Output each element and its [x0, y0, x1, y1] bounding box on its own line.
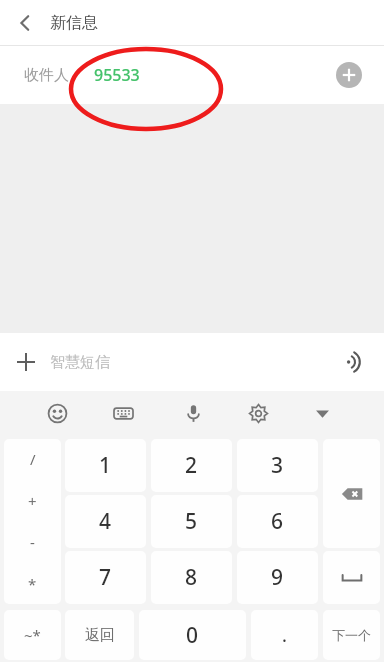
button[interactable]: Settings	[241, 396, 275, 430]
staticText: 收件人	[24, 66, 69, 85]
button[interactable]: 2	[151, 439, 232, 492]
button[interactable]: Hide keyboard	[305, 396, 339, 430]
staticText: 7	[99, 563, 112, 592]
staticText: +	[28, 491, 37, 511]
staticText: 新信息	[50, 13, 98, 33]
staticText: 9	[271, 563, 284, 592]
button[interactable]: 4	[65, 495, 146, 548]
staticText: 4	[99, 507, 112, 536]
button[interactable]: 7	[65, 551, 146, 604]
button[interactable]: .	[251, 610, 318, 660]
staticText: *	[28, 574, 37, 594]
button[interactable]: Add attachment	[8, 344, 44, 380]
button[interactable]: Voice message	[338, 345, 372, 379]
staticText: 3	[271, 451, 284, 480]
staticText: 6	[271, 507, 284, 536]
button[interactable]: Space	[323, 551, 380, 604]
button[interactable]: Backspace	[323, 439, 380, 548]
staticText: /	[30, 449, 36, 469]
button[interactable]: Back	[6, 4, 44, 42]
button[interactable]: /	[4, 439, 61, 604]
staticText: 下一个	[332, 627, 371, 643]
button[interactable]: ~*	[4, 610, 61, 660]
staticText: 5	[185, 507, 198, 536]
staticText: 2	[185, 451, 198, 480]
staticText: .	[282, 623, 287, 648]
button[interactable]: 返回	[65, 610, 134, 660]
button[interactable]: 0	[139, 610, 246, 660]
staticText: 返回	[85, 626, 115, 645]
button[interactable]: 3	[237, 439, 318, 492]
button[interactable]: Keyboard layout	[106, 396, 140, 430]
staticText: ~*	[24, 625, 41, 645]
button[interactable]: Emoji	[40, 396, 74, 430]
button[interactable]: Add contact	[336, 62, 362, 88]
staticText: 95533	[94, 64, 140, 86]
button[interactable]: 6	[237, 495, 318, 548]
staticText: 0	[186, 621, 199, 650]
button[interactable]: 1	[65, 439, 146, 492]
button[interactable]: 下一个	[323, 610, 380, 660]
button[interactable]: 9	[237, 551, 318, 604]
button[interactable]: Voice input	[176, 396, 210, 430]
button[interactable]: 5	[151, 495, 232, 548]
staticText: 1	[99, 451, 112, 480]
staticText: 8	[185, 563, 198, 592]
staticText: 智慧短信	[50, 353, 110, 372]
staticText: -	[30, 532, 35, 552]
button[interactable]: 收件人	[0, 46, 384, 104]
button[interactable]: 8	[151, 551, 232, 604]
